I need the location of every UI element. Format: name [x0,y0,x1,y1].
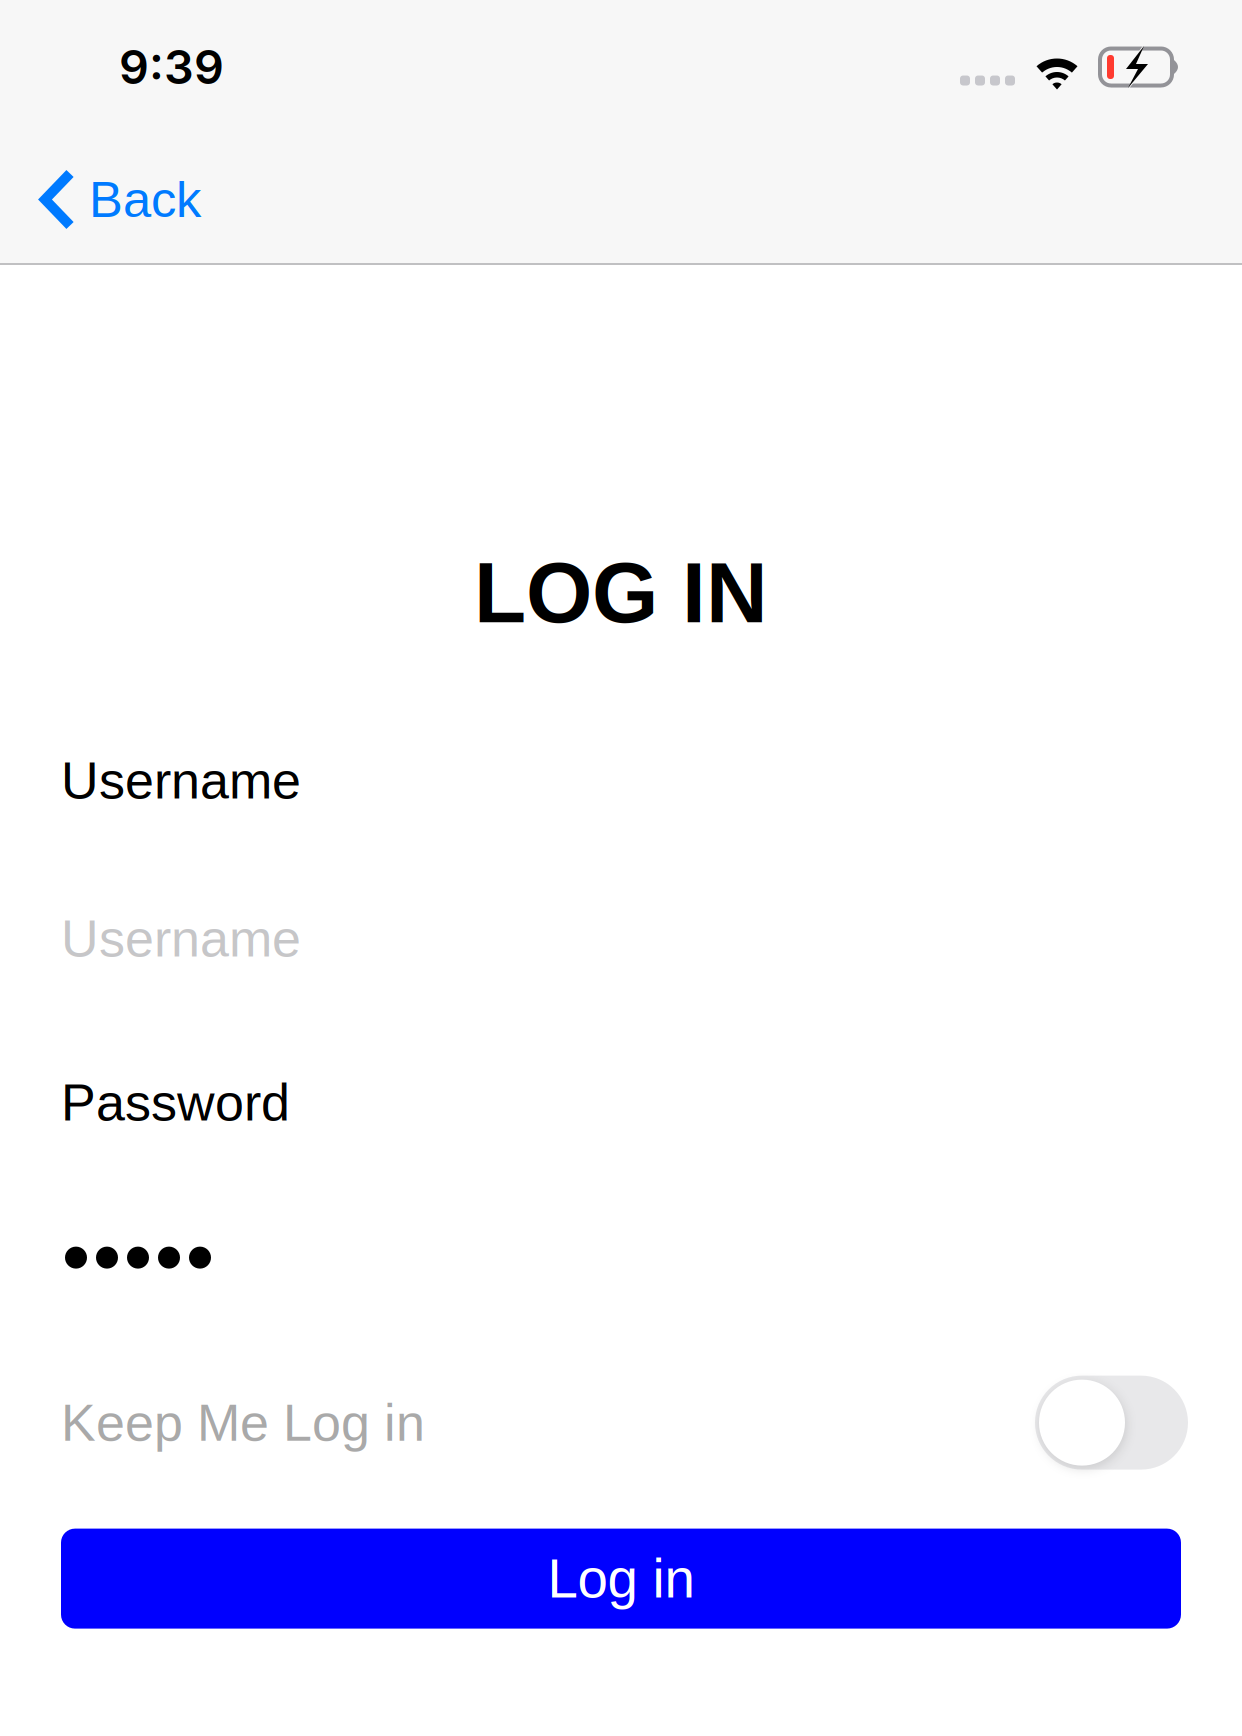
staticText: Back [89,171,201,228]
staticText: Password [61,1073,290,1132]
staticText: Log in [547,1548,694,1609]
staticText: LOG IN [474,545,768,640]
staticText: Username [61,751,301,809]
button[interactable]: Keep Me Log in [1035,1376,1188,1470]
staticText: 9:39 [119,39,224,95]
staticText: Keep Me Log in [61,1394,425,1452]
button[interactable]: Log in [61,1529,1181,1629]
staticText: Username [61,909,301,967]
button[interactable]: Back [0,134,227,265]
